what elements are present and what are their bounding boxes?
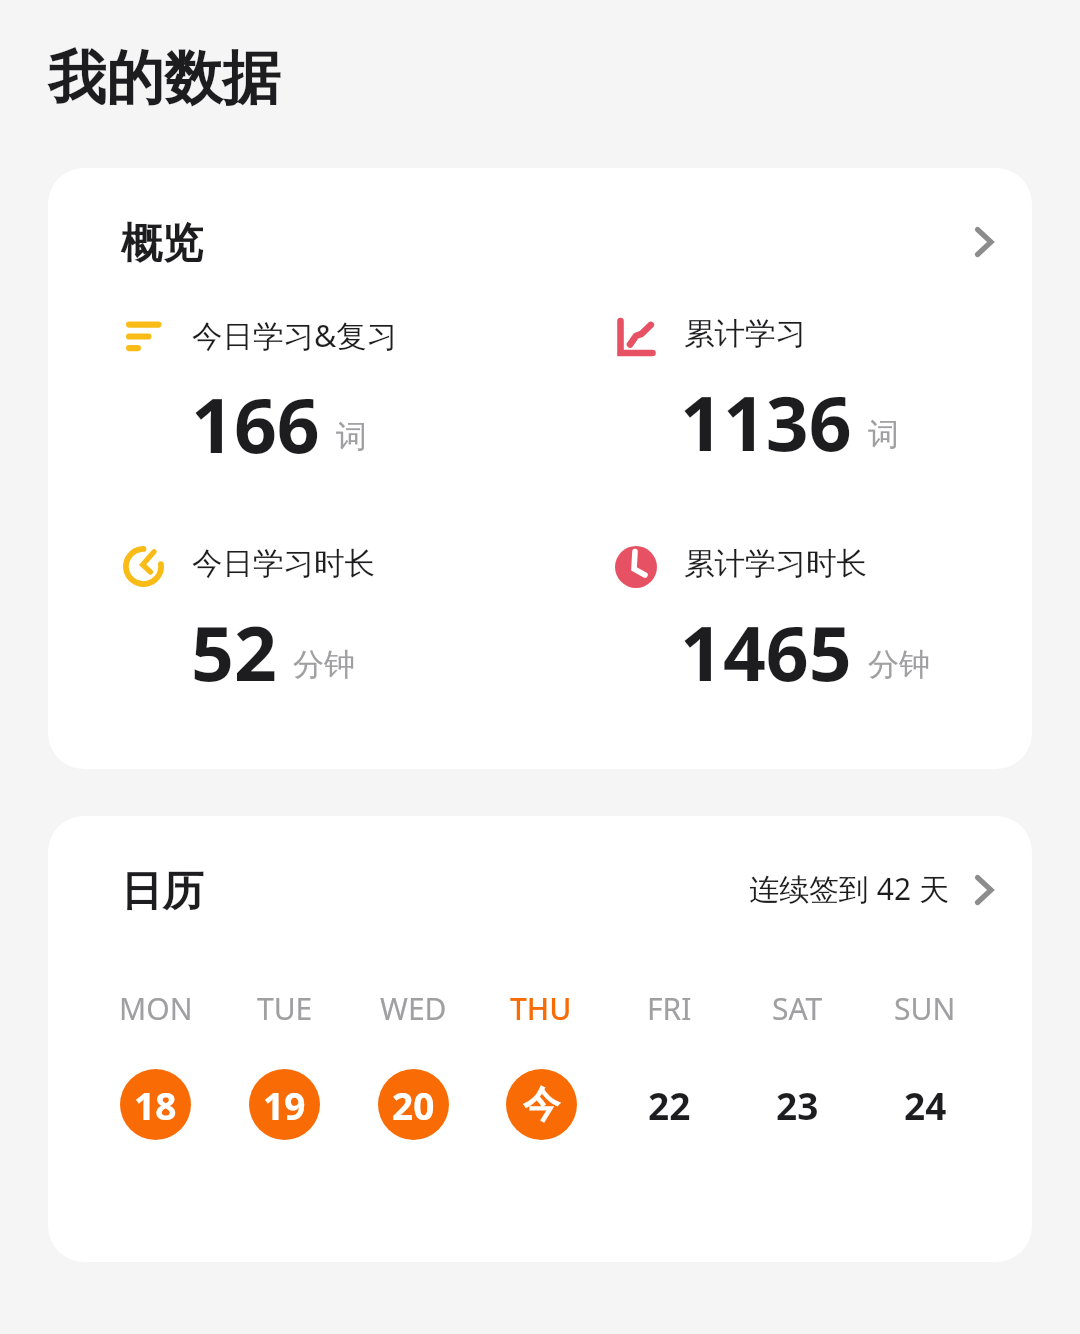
button[interactable]: 22 bbox=[634, 1069, 705, 1140]
staticText: SUN bbox=[894, 988, 956, 1029]
staticText: THU bbox=[510, 988, 572, 1029]
staticText: 累计学习 bbox=[684, 315, 806, 353]
staticText: 52 bbox=[191, 601, 277, 703]
staticText: 概览 bbox=[121, 218, 203, 270]
staticText: 今日学习&复习 bbox=[192, 314, 398, 356]
button[interactable]: 今 bbox=[506, 1069, 577, 1140]
other: Open overview details bbox=[966, 223, 1004, 261]
staticText: 1465 bbox=[680, 601, 852, 703]
staticText: 19 bbox=[263, 1080, 306, 1130]
staticText: 分钟 bbox=[868, 645, 930, 684]
button[interactable]: 23 bbox=[762, 1069, 833, 1140]
staticText: 词 bbox=[336, 417, 367, 456]
staticText: 166 bbox=[191, 373, 320, 475]
staticText: 今 bbox=[523, 1081, 560, 1128]
staticText: 我的数据 bbox=[48, 42, 280, 115]
staticText: 18 bbox=[134, 1080, 177, 1130]
button[interactable]: 18 bbox=[120, 1069, 191, 1140]
staticText: 22 bbox=[648, 1080, 691, 1130]
staticText: 24 bbox=[904, 1080, 947, 1130]
staticText: MON bbox=[119, 988, 193, 1029]
staticText: 20 bbox=[392, 1080, 435, 1130]
staticText: SAT bbox=[772, 988, 823, 1029]
staticText: FRI bbox=[647, 988, 692, 1029]
staticText: WED bbox=[380, 988, 447, 1029]
button[interactable]: 20 bbox=[378, 1069, 449, 1140]
button[interactable]: 19 bbox=[249, 1069, 320, 1140]
button[interactable]: 概览 bbox=[48, 168, 1032, 314]
staticText: 词 bbox=[868, 415, 899, 454]
staticText: TUE bbox=[257, 988, 313, 1029]
staticText: 1136 bbox=[680, 371, 852, 473]
staticText: 今日学习时长 bbox=[192, 545, 375, 583]
staticText: 23 bbox=[776, 1080, 819, 1130]
button[interactable]: 日历 bbox=[48, 816, 1032, 962]
staticText: 连续签到 42 天 bbox=[749, 868, 949, 909]
staticText: 分钟 bbox=[293, 645, 355, 684]
staticText: 累计学习时长 bbox=[684, 545, 867, 583]
other: Open calendar details bbox=[966, 871, 1004, 909]
staticText: 日历 bbox=[121, 866, 203, 918]
button[interactable]: 24 bbox=[890, 1069, 961, 1140]
